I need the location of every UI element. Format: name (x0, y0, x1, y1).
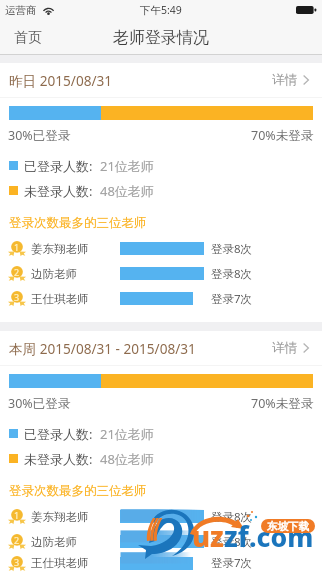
staticText: 边防老师 (31, 267, 77, 281)
staticText: 2 (14, 534, 20, 546)
staticText: 登录7次 (211, 555, 253, 571)
staticText: 登录8次 (211, 509, 253, 525)
button[interactable]: 1 (0, 504, 322, 529)
staticText: 王仕琪老师 (31, 556, 89, 570)
button[interactable]: 3 (0, 554, 322, 572)
staticText: 运营商 (5, 4, 37, 17)
staticText: 登录8次 (211, 534, 253, 550)
staticText: 首页 (14, 29, 42, 47)
staticText: 未登录人数: (24, 450, 93, 466)
staticText: 登录8次 (211, 266, 253, 282)
staticText: 本周 2015/08/31 - 2015/08/31 (9, 339, 196, 358)
staticText: 未登录人数: (24, 182, 93, 198)
staticText: 老师登录情况 (113, 28, 209, 48)
button[interactable]: 昨日 2015/08/31 (0, 63, 322, 97)
staticText: 70%未登录 (251, 127, 314, 141)
staticText: 登录次数最多的三位老师 (9, 483, 147, 499)
staticText: 姜东翔老师 (31, 242, 89, 256)
staticText: uz (192, 518, 224, 555)
staticText: 下午5:49 (140, 3, 182, 17)
staticText: 边防老师 (31, 535, 77, 549)
staticText: 登录次数最多的三位老师 (9, 215, 147, 231)
button[interactable]: 2 (0, 529, 322, 554)
button[interactable]: 首页 (0, 23, 56, 53)
staticText: 48位老师 (100, 450, 154, 466)
button[interactable]: 3 (0, 286, 322, 311)
staticText: 详情 (272, 340, 298, 356)
staticText: 21位老师 (100, 157, 154, 173)
staticText: 昨日 2015/08/31 (9, 71, 113, 90)
staticText: 登录8次 (211, 241, 253, 257)
button[interactable]: 2 (0, 261, 322, 286)
staticText: 王仕琪老师 (31, 292, 89, 306)
staticText: 3 (14, 556, 20, 568)
staticText: 2 (14, 266, 20, 278)
staticText: 21位老师 (100, 425, 154, 441)
staticText: zf (224, 518, 249, 555)
staticText: 已登录人数: (24, 157, 93, 173)
staticText: 1 (14, 241, 20, 253)
staticText: 30%已登录 (8, 127, 71, 141)
staticText: 姜东翔老师 (31, 510, 89, 524)
staticText: 3 (14, 291, 20, 303)
staticText: 70%未登录 (251, 395, 314, 409)
button[interactable]: 本周 2015/08/31 - 2015/08/31 (0, 331, 322, 365)
staticText: 已登录人数: (24, 425, 93, 441)
staticText: 1 (14, 509, 20, 521)
staticText: 东坡下载 (267, 520, 309, 533)
button[interactable]: 1 (0, 236, 322, 261)
staticText: 登录7次 (211, 291, 253, 307)
staticText: 详情 (272, 72, 298, 88)
staticText: 48位老师 (100, 182, 154, 198)
staticText: 30%已登录 (8, 395, 71, 409)
staticText: .com (249, 519, 314, 555)
